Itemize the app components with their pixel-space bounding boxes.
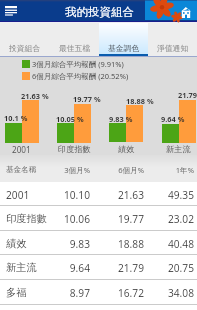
staticText: 績效 [118,144,135,154]
staticText: 新主流 [6,261,37,274]
staticText: 34.08 [167,286,194,300]
staticText: 23.02 [167,212,194,226]
button[interactable]: 新主流 [0,255,197,280]
button[interactable]: 印度指數 [0,206,197,231]
button[interactable]: 多福 [0,280,197,305]
staticText: 10.10 [63,188,90,202]
button[interactable]: Menu [0,0,21,21]
staticText: 印度指數 [6,212,47,225]
staticText: 3個月% [64,165,90,175]
staticText: 新主流 [166,144,191,154]
staticText: 10.1 % [4,113,28,123]
staticText: 21.79 [117,261,144,275]
staticText: 8.97 [69,286,90,300]
staticText: 我的投資組合 [65,5,134,19]
staticText: 6個月% [118,165,144,175]
staticText: 18.88 % [126,96,154,106]
staticText: 3個月綜合平均報酬 (9.91%) [32,59,124,69]
staticText: 49.35 [167,188,194,202]
button[interactable]: 績效 [0,231,197,256]
staticText: 基金調色 [108,43,140,53]
staticText: 2001 [6,188,30,202]
staticText: 基金名稱 [6,165,37,175]
staticText: 19.77 % [73,94,101,104]
staticText: 9.83 % [109,114,133,124]
staticText: 1年% [175,165,194,175]
staticText: 9.64 [69,261,90,275]
staticText: 18.88 [117,237,144,251]
staticText: 40.48 [167,237,194,251]
staticText: 印度指數 [58,144,91,154]
staticText: 19.77 [117,212,144,226]
staticText: 多福 [6,286,27,299]
staticText: 16.72 [117,286,144,300]
staticText: 6個月綜合平均報酬 (20.52%) [32,71,129,81]
staticText: 投資組合 [9,43,41,53]
staticText: 21.63 % [21,91,49,101]
staticText: 21.63 [117,188,144,202]
staticText: 最佳五檔 [59,43,91,53]
staticText: 2001 [12,144,31,155]
button[interactable]: Home [181,6,192,18]
staticText: 10.05 % [56,114,84,124]
button[interactable]: 淨值通知 [148,23,197,57]
staticText: 淨值通知 [157,43,189,53]
button[interactable]: 基金調色 [99,23,148,57]
staticText: 21.79 % [178,90,197,100]
staticText: 20.75 [167,261,194,275]
button[interactable]: 投資組合 [0,23,50,57]
staticText: 10.06 [63,212,90,226]
staticText: 績效 [6,237,27,250]
button[interactable]: 最佳五檔 [50,23,99,57]
staticText: 9.64 % [161,114,185,124]
staticText: 9.83 [69,237,90,251]
button[interactable]: 2001 [0,182,197,207]
